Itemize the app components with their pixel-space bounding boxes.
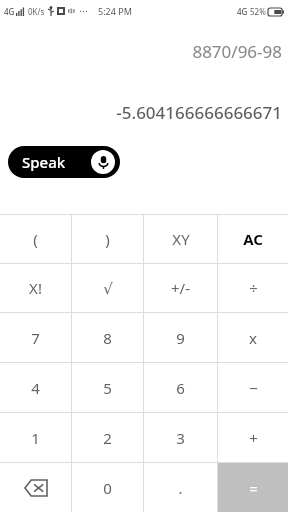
- button[interactable]: 0: [72, 463, 143, 512]
- button[interactable]: .: [144, 463, 217, 512]
- staticText: x: [249, 328, 257, 348]
- staticText: 4: [31, 378, 40, 398]
- staticText: +: [249, 428, 258, 448]
- button[interactable]: 6: [144, 363, 217, 412]
- staticText: -5.604166666666671: [0, 101, 282, 124]
- button[interactable]: XY: [144, 215, 217, 263]
- button[interactable]: 4: [0, 363, 71, 412]
- button[interactable]: 2: [72, 413, 143, 462]
- staticText: 52%: [250, 6, 266, 17]
- button[interactable]: −: [218, 363, 288, 412]
- button[interactable]: 7: [0, 313, 71, 362]
- staticText: Speak: [22, 152, 66, 172]
- staticText: (: [33, 229, 38, 249]
- staticText: AC: [243, 229, 263, 249]
- button[interactable]: 1: [0, 413, 71, 462]
- staticText: 7: [31, 328, 40, 348]
- button[interactable]: 3: [144, 413, 217, 462]
- staticText: 9: [176, 328, 185, 348]
- staticText: 4G: [237, 6, 248, 17]
- button[interactable]: AC: [218, 215, 288, 263]
- button[interactable]: 8: [72, 313, 143, 362]
- staticText: =: [249, 478, 258, 498]
- staticText: .: [178, 478, 183, 498]
- staticText: 0K/s: [28, 6, 45, 17]
- button[interactable]: =: [218, 463, 288, 512]
- staticText: 5:24 PM: [98, 5, 132, 17]
- button[interactable]: √: [72, 264, 143, 312]
- button[interactable]: 9: [144, 313, 217, 362]
- staticText: 2: [103, 428, 112, 448]
- button[interactable]: +: [218, 413, 288, 462]
- staticText: ÷: [249, 278, 258, 298]
- staticText: 8870/96-98: [0, 40, 282, 63]
- button[interactable]: (: [0, 215, 71, 263]
- button[interactable]: ): [72, 215, 143, 263]
- button[interactable]: x: [218, 313, 288, 362]
- staticText: 1: [31, 428, 40, 448]
- staticText: √: [103, 280, 113, 297]
- staticText: −: [249, 378, 258, 398]
- staticText: 3: [176, 428, 185, 448]
- staticText: 4G: [4, 6, 15, 17]
- staticText: ⋯: [79, 6, 88, 16]
- button[interactable]: ÷: [218, 264, 288, 312]
- staticText: 0: [103, 478, 112, 498]
- staticText: 5: [103, 378, 112, 398]
- button[interactable]: Speak: [8, 146, 120, 178]
- button[interactable]: +/-: [144, 264, 217, 312]
- staticText: XY: [172, 229, 190, 249]
- button[interactable]: Backspace: [0, 463, 71, 512]
- button[interactable]: 5: [72, 363, 143, 412]
- staticText: 6: [176, 378, 185, 398]
- button[interactable]: X!: [0, 264, 71, 312]
- staticText: 8: [103, 328, 112, 348]
- staticText: X!: [29, 278, 42, 298]
- staticText: +/-: [171, 278, 190, 298]
- staticText: ): [105, 229, 110, 249]
